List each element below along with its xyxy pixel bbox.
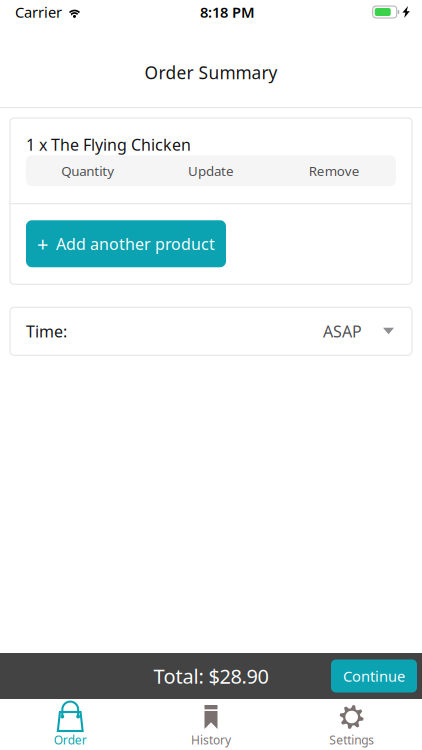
button[interactable]: History	[141, 699, 281, 750]
staticText: Quantity	[61, 162, 114, 180]
staticText: Total: $28.90	[153, 663, 268, 689]
button[interactable]: Remove	[273, 155, 396, 186]
staticText: +	[37, 230, 48, 257]
staticText: ASAP	[323, 321, 362, 342]
button[interactable]: Settings	[281, 699, 422, 750]
staticText: Order	[54, 732, 87, 748]
staticText: Time:	[26, 321, 67, 342]
button[interactable]: Update	[149, 155, 273, 186]
button[interactable]: Order	[0, 699, 141, 750]
staticText: 1 x The Flying Chicken	[26, 134, 191, 155]
staticText: History	[191, 732, 231, 748]
staticText: Add another product	[56, 233, 215, 254]
button[interactable]: +	[26, 220, 226, 267]
button[interactable]: ASAP	[323, 313, 394, 350]
staticText: Order Summary	[144, 61, 277, 84]
button[interactable]: Quantity	[26, 155, 149, 186]
staticText: Carrier	[15, 2, 62, 22]
staticText: 8:18 PM	[200, 2, 255, 22]
staticText: Update	[188, 162, 234, 180]
staticText: Continue	[343, 666, 405, 686]
staticText: Remove	[309, 162, 360, 180]
button[interactable]: Continue	[331, 659, 417, 692]
staticText: Settings	[329, 732, 374, 748]
